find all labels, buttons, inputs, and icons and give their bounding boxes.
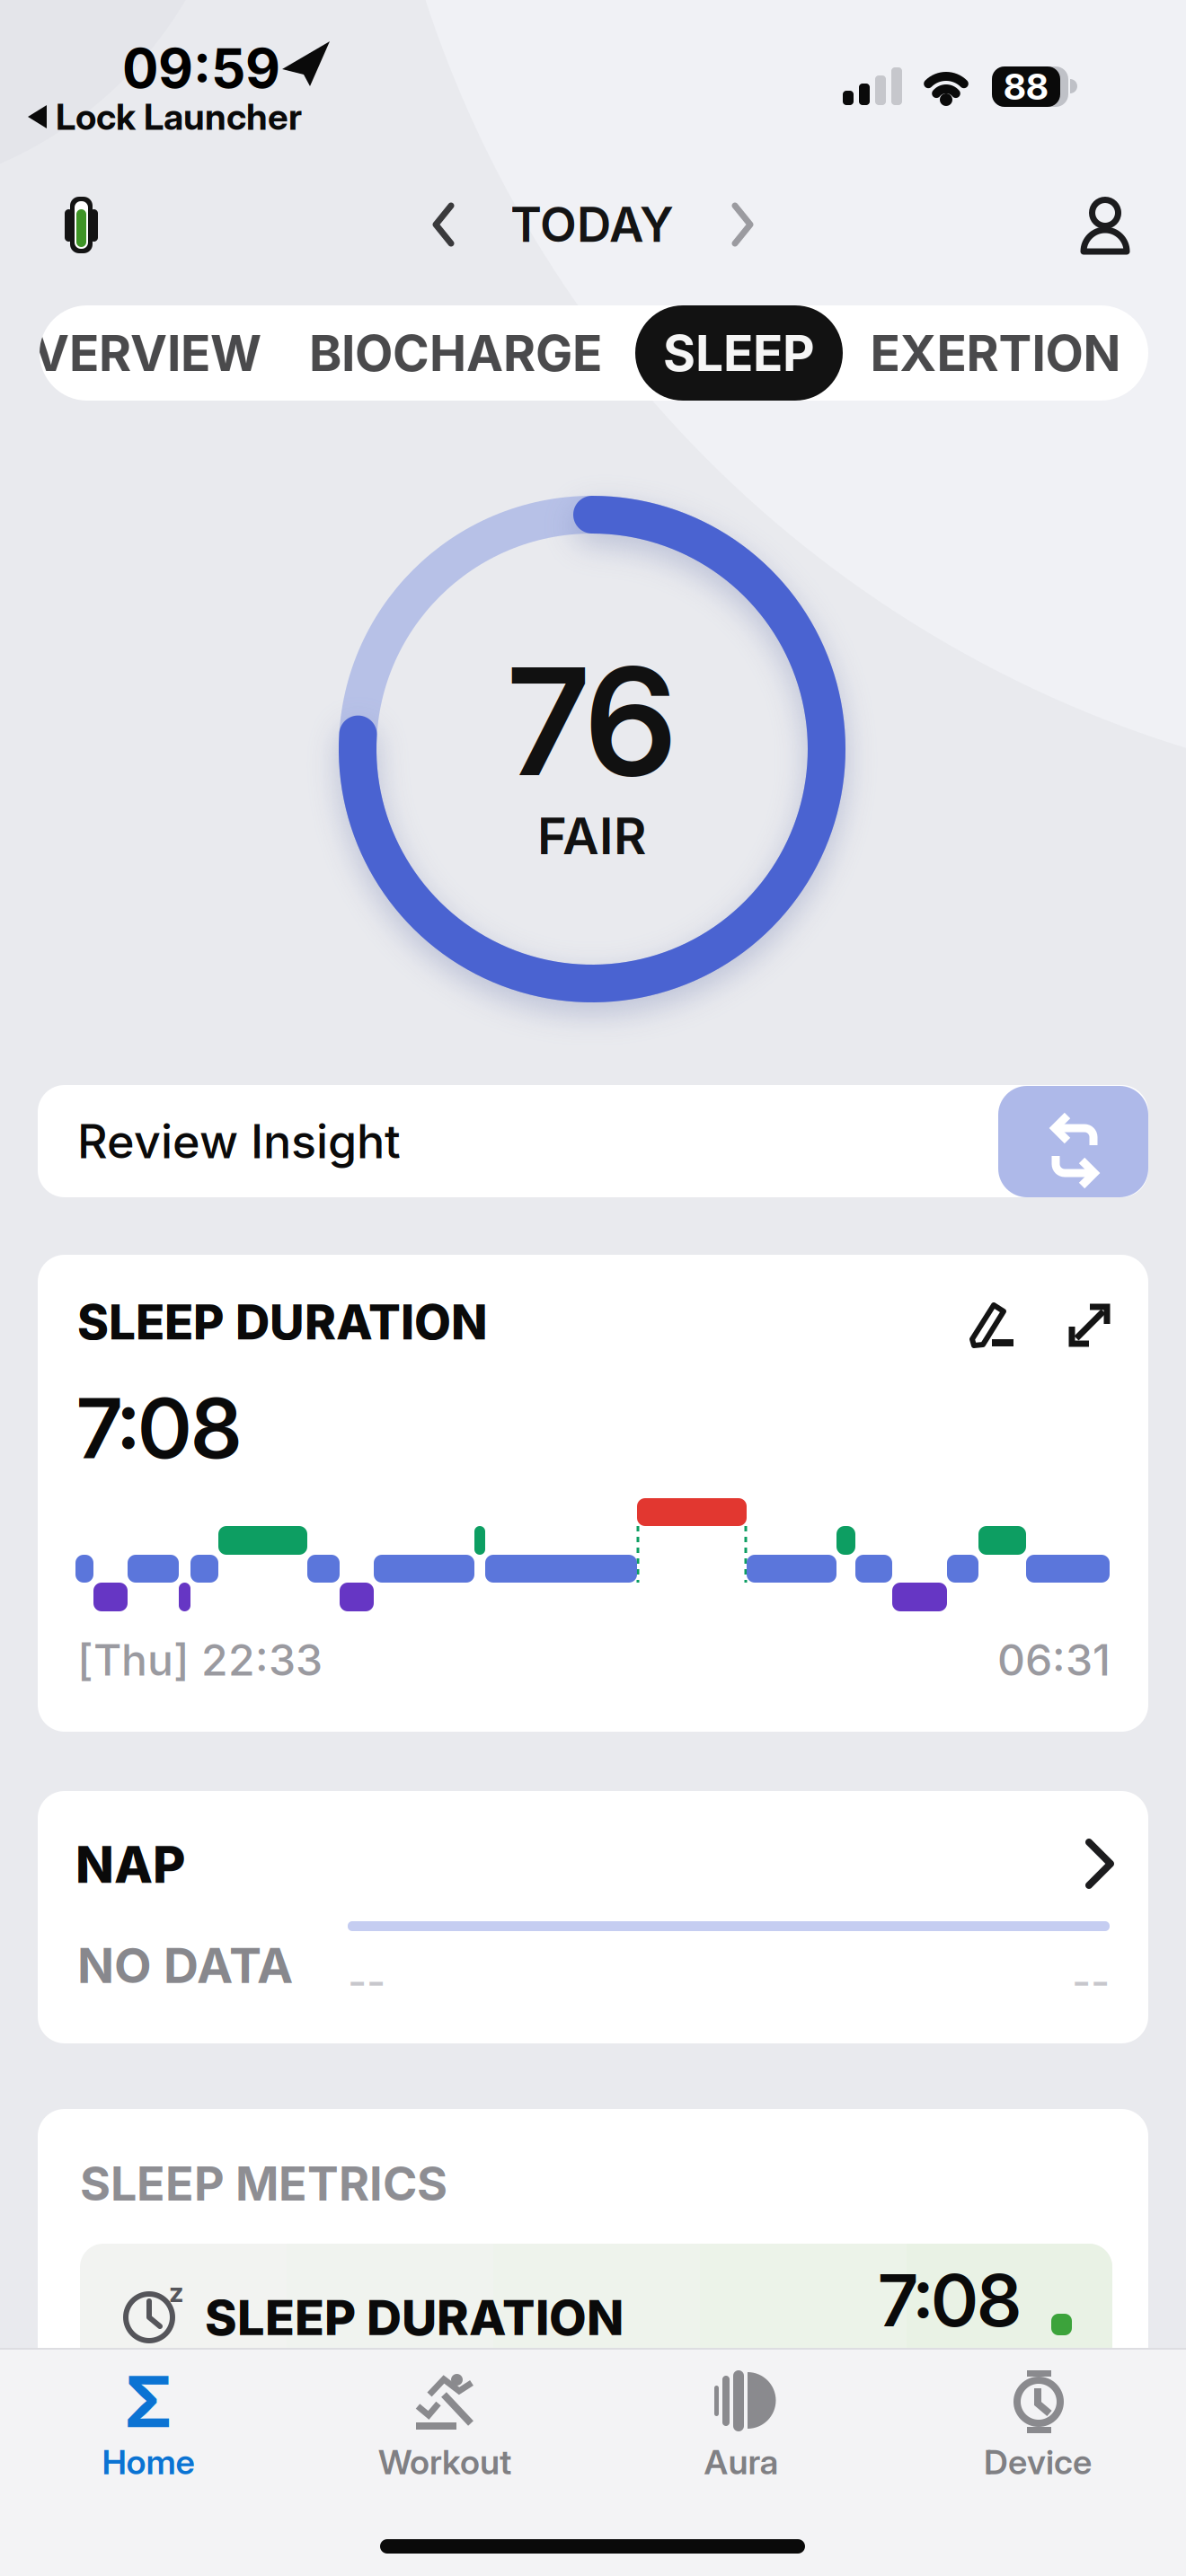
button[interactable]: Device [889,2369,1186,2504]
button[interactable] [714,189,772,260]
staticText: TODAY [510,196,674,253]
staticText: [Thu] 22:33 [77,1634,323,1686]
staticText: 76 [509,632,676,811]
staticText: Aura [704,2441,779,2483]
button[interactable]: Review Insight [38,1085,1148,1197]
staticText: SLEEP METRICS [80,2155,447,2212]
staticText: NO DATA [77,1936,293,1995]
staticText: BIOCHARGE [309,323,602,383]
staticText: Workout [378,2441,511,2483]
button[interactable] [998,1086,1148,1197]
staticText: -- [348,1956,385,2006]
button[interactable]: EXERTION [843,321,1148,385]
staticText: 7:08 [879,2257,1021,2344]
button[interactable] [951,1288,1026,1363]
staticText: Device [984,2441,1092,2483]
staticText: 88 [1004,65,1049,108]
staticText: -- [1072,1956,1110,2006]
staticText: SLEEP DURATION [205,2288,624,2347]
staticText: EXERTION [870,323,1121,383]
button[interactable] [52,187,110,262]
button[interactable] [1071,185,1139,260]
staticText: OVERVIEW [0,323,261,383]
staticText: 7:08 [77,1378,242,1478]
button[interactable]: z [80,2244,1112,2576]
button[interactable]: Σ [0,2369,296,2504]
button[interactable] [415,189,473,260]
staticText: NAP [75,1834,186,1895]
staticText: SLEEP [663,323,815,383]
staticText: FAIR [537,806,647,867]
button[interactable]: BIOCHARGE [303,321,608,385]
staticText: Lock Launcher [56,95,302,139]
button[interactable] [1053,1286,1125,1362]
staticText: SLEEP DURATION [77,1293,488,1351]
button[interactable] [38,1791,1148,2043]
button[interactable]: OVERVIEW [0,321,302,385]
button[interactable]: Aura [593,2369,889,2504]
staticText: z [169,2276,183,2309]
staticText: Σ [124,2359,173,2444]
button[interactable]: SLEEP [635,305,843,401]
staticText: 09:59 [122,36,280,101]
staticText: Review Insight [77,1113,401,1169]
staticText: Home [102,2441,195,2483]
button[interactable]: Workout [296,2369,593,2504]
staticText: 06:31 [997,1634,1111,1686]
